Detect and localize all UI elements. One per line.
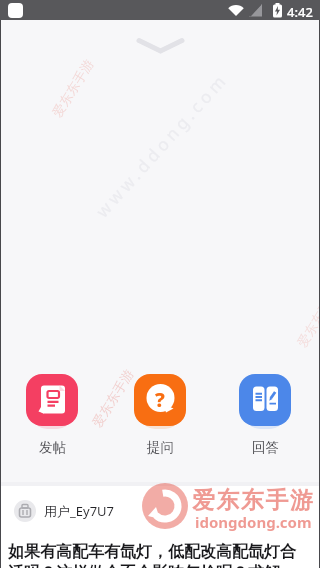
staticText: 用户_Ey7U7 [44, 502, 115, 520]
button[interactable]: 用户_Ey7U7 [14, 500, 115, 522]
button[interactable]: 回答 [239, 374, 291, 456]
staticText: 适吗？这样做会不会影响年检呢？求解 [8, 563, 280, 568]
staticText: 爱东东手游 [293, 286, 320, 350]
staticText: 如果有高配车有氙灯，低配改高配氙灯合 [8, 542, 296, 562]
staticText: 爱东东手游 [192, 486, 315, 515]
button[interactable]: ? [134, 374, 186, 456]
staticText: 爱东东手游 [48, 56, 96, 120]
staticText: 4:42 [287, 3, 313, 21]
staticText: 发帖 [39, 439, 66, 456]
staticText: 回答 [252, 439, 279, 456]
staticText: idongdong.com [195, 512, 312, 532]
button[interactable]: 发帖 [26, 374, 78, 456]
staticText: ? [155, 386, 165, 413]
staticText: 爱东东手游 [88, 366, 136, 430]
staticText: 提问 [147, 439, 174, 456]
